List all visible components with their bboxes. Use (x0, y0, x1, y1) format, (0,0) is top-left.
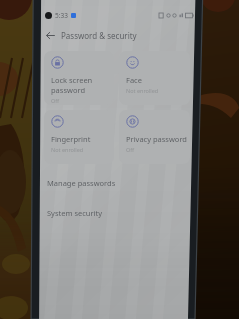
staticText: System security (47, 208, 103, 218)
staticText: Privacy password (126, 134, 187, 144)
staticText: Manage passwords (47, 178, 116, 188)
button[interactable]: Lock screen password (44, 51, 114, 105)
staticText: 5:33 (55, 11, 68, 20)
staticText: Off (51, 97, 60, 104)
staticText: Not enrolled (51, 146, 84, 153)
staticText: Face (126, 75, 142, 85)
button[interactable]: System security (41, 198, 193, 228)
button[interactable]: Manage passwords (41, 168, 193, 198)
staticText: Password & security (61, 30, 137, 41)
button[interactable]: Fingerprint (44, 110, 114, 164)
button[interactable]: Back (43, 28, 57, 42)
button[interactable]: Face (119, 51, 190, 105)
staticText: Off (126, 146, 135, 153)
staticText: Lock screen password (51, 75, 93, 95)
staticText: Fingerprint (51, 134, 91, 144)
button[interactable]: Privacy password (119, 110, 190, 164)
staticText: Not enrolled (126, 87, 159, 94)
